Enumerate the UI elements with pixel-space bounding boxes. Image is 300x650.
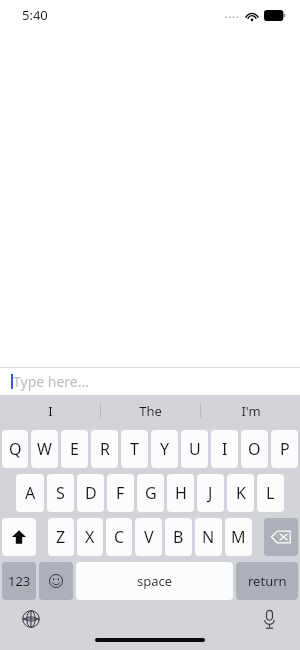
button[interactable]: K bbox=[227, 474, 254, 512]
staticText: N bbox=[202, 526, 215, 548]
button[interactable]: U bbox=[181, 430, 208, 468]
staticText: return bbox=[248, 572, 287, 590]
button[interactable]: F bbox=[107, 474, 134, 512]
button[interactable]: G bbox=[137, 474, 164, 512]
button[interactable]: T bbox=[121, 430, 148, 468]
button[interactable]: D bbox=[77, 474, 104, 512]
staticText: 123 bbox=[8, 572, 31, 590]
staticText: Q bbox=[9, 438, 22, 460]
button[interactable]: J bbox=[197, 474, 224, 512]
staticText: 5:40 bbox=[22, 6, 48, 24]
button[interactable]: I bbox=[211, 430, 238, 468]
staticText: I bbox=[222, 438, 228, 460]
button[interactable]: I'm bbox=[201, 395, 300, 427]
button[interactable]: Q bbox=[2, 430, 28, 468]
staticText: W bbox=[37, 438, 52, 460]
staticText: H bbox=[175, 482, 187, 504]
staticText: F bbox=[116, 482, 125, 504]
staticText: T bbox=[130, 438, 139, 460]
staticText: M bbox=[231, 526, 246, 548]
button[interactable]: C bbox=[106, 518, 132, 556]
button[interactable]: S bbox=[47, 474, 74, 512]
button[interactable]: Voice input bbox=[256, 606, 282, 632]
button[interactable]: W bbox=[31, 430, 58, 468]
staticText: Z bbox=[56, 526, 66, 548]
staticText: A bbox=[25, 482, 36, 504]
staticText: The bbox=[139, 402, 162, 420]
button[interactable]: N bbox=[195, 518, 222, 556]
staticText: K bbox=[236, 482, 246, 504]
button[interactable]: return bbox=[236, 562, 298, 600]
button[interactable]: V bbox=[135, 518, 162, 556]
button[interactable]: 123 bbox=[2, 562, 36, 600]
button[interactable]: Type here... bbox=[0, 368, 300, 395]
staticText: I'm bbox=[241, 402, 261, 420]
staticText: G bbox=[145, 482, 157, 504]
button[interactable]: Backspace bbox=[264, 518, 298, 556]
button[interactable]: L bbox=[257, 474, 284, 512]
button[interactable]: E bbox=[61, 430, 88, 468]
staticText: X bbox=[85, 526, 95, 548]
button[interactable]: X bbox=[77, 518, 103, 556]
staticText: L bbox=[266, 482, 275, 504]
button[interactable]: A bbox=[16, 474, 44, 512]
button[interactable]: The bbox=[101, 395, 200, 427]
staticText: O bbox=[248, 438, 261, 460]
staticText: space bbox=[137, 572, 173, 590]
button[interactable]: B bbox=[165, 518, 192, 556]
button[interactable]: Change keyboard language bbox=[18, 606, 44, 632]
staticText: S bbox=[56, 482, 65, 504]
button[interactable]: Z bbox=[48, 518, 74, 556]
staticText: E bbox=[70, 438, 79, 460]
staticText: D bbox=[85, 482, 97, 504]
staticText: B bbox=[173, 526, 184, 548]
staticText: I bbox=[48, 402, 53, 420]
staticText: J bbox=[208, 482, 213, 504]
staticText: Y bbox=[160, 438, 170, 460]
staticText: P bbox=[280, 438, 290, 460]
button[interactable]: H bbox=[167, 474, 194, 512]
button[interactable]: O bbox=[241, 430, 268, 468]
button[interactable]: Shift bbox=[2, 518, 36, 556]
button[interactable]: R bbox=[91, 430, 118, 468]
staticText: U bbox=[189, 438, 201, 460]
button[interactable]: Emoji bbox=[39, 562, 73, 600]
staticText: C bbox=[114, 526, 125, 548]
staticText: V bbox=[144, 526, 154, 548]
button[interactable]: I bbox=[0, 395, 100, 427]
staticText: R bbox=[100, 438, 110, 460]
button[interactable]: P bbox=[271, 430, 298, 468]
button[interactable]: M bbox=[225, 518, 252, 556]
staticText: Type here... bbox=[13, 372, 89, 391]
button[interactable]: Y bbox=[151, 430, 178, 468]
button[interactable]: space bbox=[76, 562, 233, 600]
